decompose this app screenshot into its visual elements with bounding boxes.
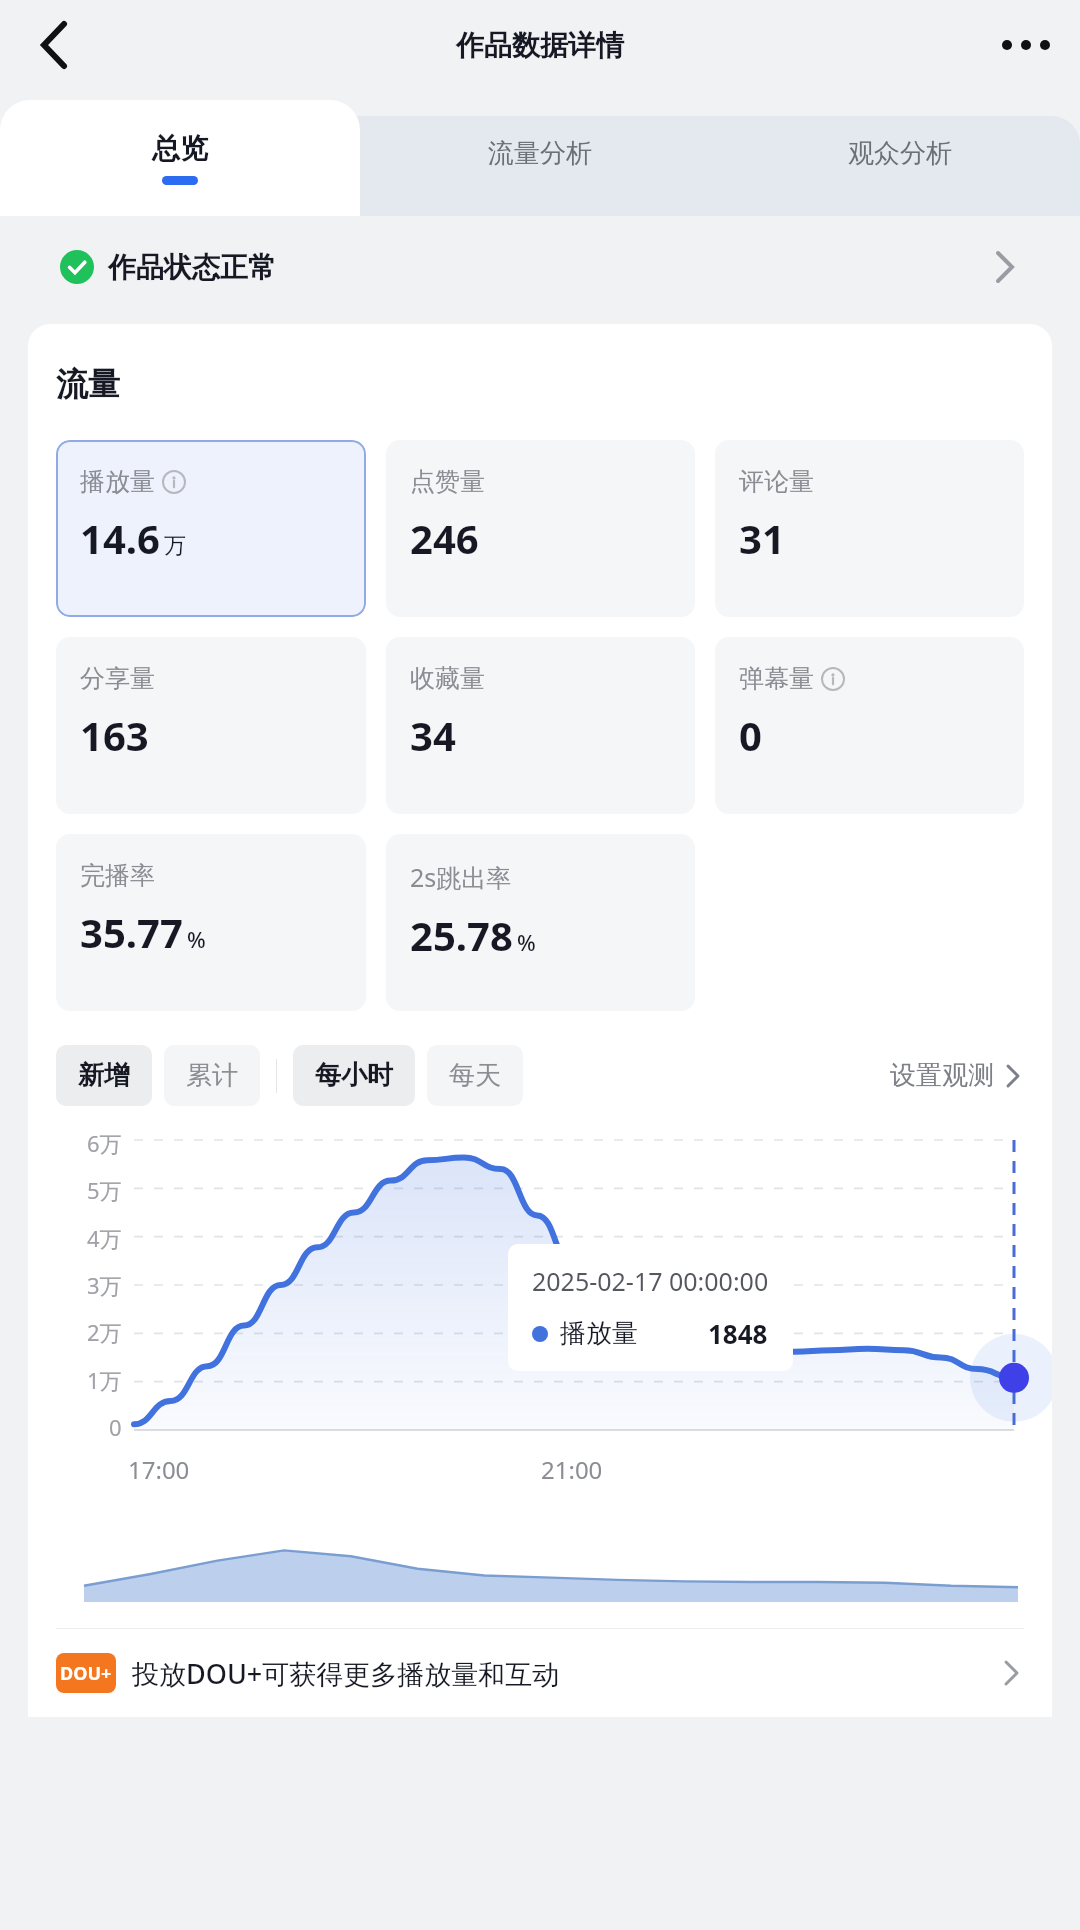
staticText: 0 [109,1412,122,1442]
staticText: 25.78 [410,908,513,962]
button[interactable]: 收藏量 [386,637,695,814]
staticText: 流量分析 [488,137,592,170]
staticText: 5万 [87,1175,122,1205]
staticText: 分享量 [80,663,155,694]
staticText: 完播率 [80,860,155,891]
staticText: 17:00 [128,1453,190,1486]
button[interactable]: 新增 [56,1045,152,1106]
button[interactable]: 播放量 [56,440,366,617]
button[interactable]: 流量分析 [360,90,720,216]
button[interactable]: Back [22,13,86,77]
staticText: 4万 [87,1223,122,1253]
staticText: 总览 [152,131,208,166]
staticText: 累计 [186,1059,238,1092]
staticText: 34 [410,708,456,762]
staticText: % [187,924,206,954]
button[interactable]: 设置观测 [890,1059,1024,1092]
staticText: 万 [164,532,186,560]
staticText: 点赞量 [410,466,485,497]
staticText: 观众分析 [848,137,952,170]
button[interactable]: 累计 [164,1045,260,1106]
staticText: 作品状态正常 [108,250,276,285]
staticText: 评论量 [739,466,814,497]
staticText: 作品数据详情 [456,28,624,63]
button[interactable]: 分享量 [56,637,366,814]
button[interactable]: 每天 [427,1045,523,1106]
staticText: 6万 [87,1128,122,1158]
button[interactable]: 评论量 [715,440,1024,617]
staticText: 播放量 [80,466,155,497]
staticText: 2万 [87,1317,122,1347]
staticText: 弹幕量 [739,663,814,694]
staticText: 每天 [449,1059,501,1092]
staticText: % [517,927,536,957]
staticText: 3万 [87,1270,122,1300]
button[interactable]: 弹幕量 [715,637,1024,814]
staticText: 0 [739,708,762,762]
button[interactable]: 总览 [0,100,360,216]
staticText: 新增 [78,1059,130,1092]
staticText: 14.6 [80,511,160,565]
staticText: 35.77 [80,905,183,959]
staticText: 2s跳出率 [410,860,512,894]
staticText: 设置观测 [890,1059,994,1092]
staticText: DOU+ [60,1661,112,1686]
button[interactable]: 每小时 [293,1045,415,1106]
button[interactable]: 作品状态正常 [0,232,1080,302]
staticText: 流量 [56,364,120,404]
staticText: 163 [80,708,149,762]
staticText: 每小时 [315,1059,393,1092]
button[interactable]: 点赞量 [386,440,695,617]
staticText: 投放DOU+可获得更多播放量和互动 [132,1655,560,1692]
staticText: 246 [410,511,479,565]
staticText: 1万 [87,1365,122,1395]
staticText: 1848 [708,1316,768,1351]
button[interactable]: 2s跳出率 [386,834,695,1011]
button[interactable]: More options [994,13,1058,77]
button[interactable]: DOU+ [56,1653,1024,1693]
staticText: 2025-02-17 00:00:00 [532,1264,769,1298]
staticText: 播放量 [560,1317,638,1350]
staticText: 31 [739,511,785,565]
button[interactable]: 完播率 [56,834,366,1011]
staticText: 收藏量 [410,663,485,694]
button[interactable]: 观众分析 [720,90,1080,216]
staticText: 21:00 [541,1453,603,1486]
